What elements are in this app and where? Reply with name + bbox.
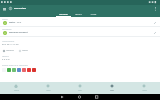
button[interactable]: Edit — [152, 21, 157, 25]
staticText: NOTES — [86, 13, 101, 15]
staticText: YOUR WEIGHT — [2, 40, 15, 42]
button[interactable]: Reaction 3 — [17, 68, 21, 72]
button[interactable]: Home — [0, 82, 32, 94]
button[interactable]: More — [128, 82, 160, 94]
staticText: Imperial — [6, 49, 14, 52]
button[interactable]: Water 1.2 L — [0, 21, 160, 25]
staticText: Home — [14, 89, 19, 91]
button[interactable]: Imperial — [3, 49, 14, 52]
staticText: Morning Workout — [9, 31, 28, 34]
staticText: Stats — [110, 89, 114, 91]
staticText: YESTERDAY — [2, 28, 12, 30]
button[interactable]: NOTES — [86, 12, 101, 17]
staticText: Metric — [22, 49, 28, 52]
staticText: DETAILS — [71, 13, 86, 15]
button[interactable]: Navigation menu — [0, 5, 9, 12]
staticText: Information — [14, 7, 27, 10]
button[interactable]: Reaction 4 — [22, 68, 26, 72]
staticText: More — [142, 89, 147, 91]
button[interactable]: Reaction 5 — [27, 68, 31, 72]
button[interactable]: Reaction 2 — [12, 68, 16, 72]
button[interactable]: Morning Workout — [0, 31, 160, 35]
button[interactable]: Reaction 1 — [7, 68, 11, 72]
button[interactable]: Plan — [64, 82, 96, 94]
staticText: TODAY — [2, 18, 8, 20]
button[interactable]: Metric — [19, 49, 28, 52]
staticText: Plan — [78, 89, 82, 91]
staticText: SUMMARY — [56, 13, 71, 15]
staticText: 80.4 kg / 177 lbs — [2, 43, 19, 46]
button[interactable]: Reaction 6 — [32, 68, 36, 72]
staticText: 5 ft 9 in — [2, 58, 10, 61]
button[interactable]: SUMMARY — [56, 12, 71, 17]
button[interactable]: More options — [151, 5, 160, 12]
button[interactable]: Stats — [96, 82, 128, 94]
staticText: Water 1.2 L — [9, 21, 22, 24]
button[interactable]: Edit — [152, 31, 157, 35]
button[interactable]: DETAILS — [71, 12, 86, 17]
staticText: Diary — [46, 89, 51, 91]
staticText: HEIGHT — [2, 55, 9, 57]
button[interactable]: Diary — [32, 82, 64, 94]
staticText: Please leave us a comment — [2, 64, 28, 67]
